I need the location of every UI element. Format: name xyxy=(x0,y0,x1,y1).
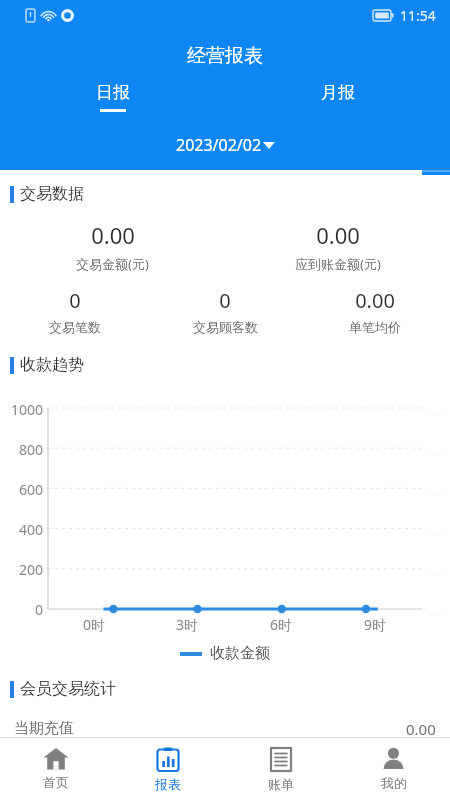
staticText: 账单 xyxy=(268,776,294,792)
button[interactable]: 月报 xyxy=(225,82,450,122)
staticText: 0 xyxy=(219,287,231,314)
button[interactable]: 首页 xyxy=(0,738,112,800)
staticText: 0 xyxy=(69,287,81,314)
staticText: 9时 xyxy=(364,615,387,634)
staticText: 200 xyxy=(19,560,44,579)
staticText: 6时 xyxy=(270,615,293,634)
staticText: 首页 xyxy=(43,774,69,790)
button[interactable]: 日报 xyxy=(0,82,225,122)
staticText: 会员交易统计 xyxy=(20,679,116,699)
staticText: 报表 xyxy=(155,776,181,792)
staticText: 月报 xyxy=(321,82,355,103)
staticText: 0时 xyxy=(83,615,106,634)
staticText: 收款金额 xyxy=(210,644,270,663)
staticText: 0.00 xyxy=(406,719,436,737)
staticText: 交易金额(元) xyxy=(76,255,149,273)
staticText: 交易数据 xyxy=(20,184,84,204)
staticText: 0 xyxy=(35,600,44,619)
staticText: 0.00 xyxy=(91,220,135,250)
staticText: 0.00 xyxy=(316,220,360,250)
button[interactable]: 我的 xyxy=(337,738,450,800)
staticText: 应到账金额(元) xyxy=(295,255,381,273)
staticText: 我的 xyxy=(381,775,407,791)
staticText: 交易笔数 xyxy=(49,319,101,335)
button[interactable]: 报表 xyxy=(112,738,224,800)
button[interactable]: 2023/02/02 xyxy=(166,129,285,161)
staticText: 日报 xyxy=(96,82,130,103)
staticText: 交易顾客数 xyxy=(193,319,258,335)
staticText: 当期充值 xyxy=(14,719,74,737)
staticText: 600 xyxy=(19,480,44,499)
staticText: 11:54 xyxy=(400,6,436,25)
staticText: 单笔均价 xyxy=(349,319,401,335)
staticText: 0.00 xyxy=(355,287,395,314)
staticText: 经营报表 xyxy=(187,44,263,68)
staticText: 400 xyxy=(19,520,44,539)
staticText: 收款趋势 xyxy=(20,355,84,375)
staticText: 1000 xyxy=(11,400,44,419)
staticText: 2023/02/02 xyxy=(176,134,262,156)
staticText: 800 xyxy=(19,440,44,459)
button[interactable]: 账单 xyxy=(224,738,337,800)
staticText: 3时 xyxy=(176,615,199,634)
